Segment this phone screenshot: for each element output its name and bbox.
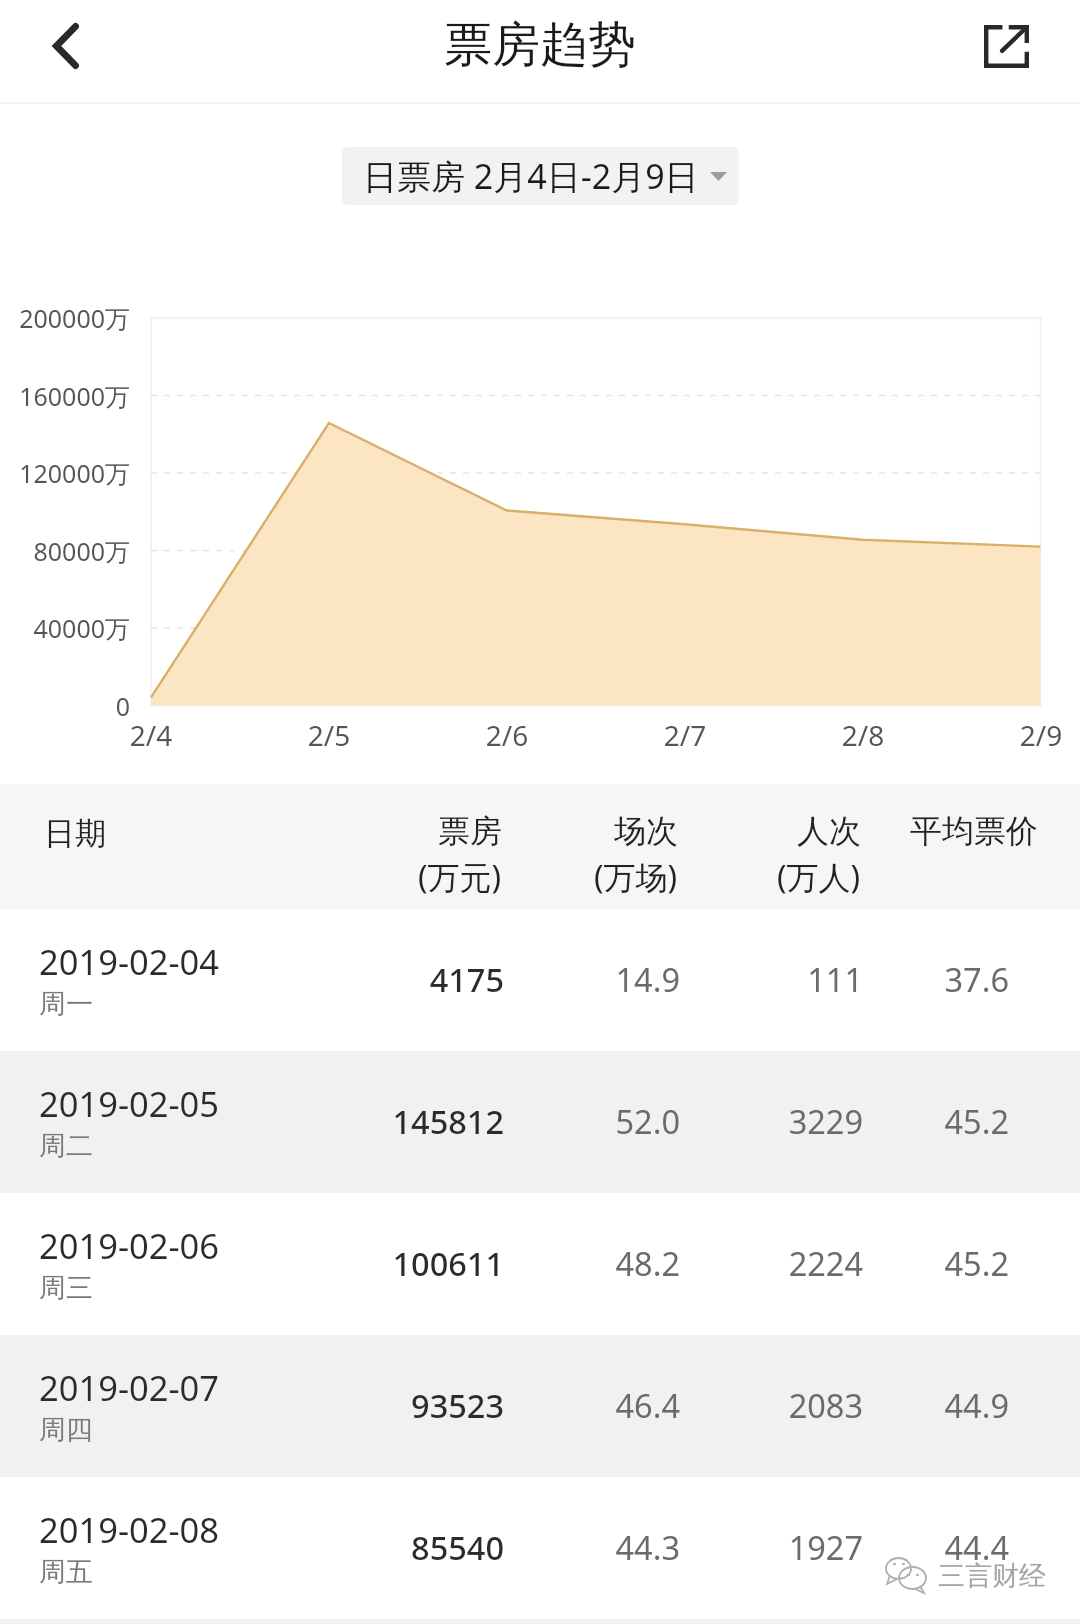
button[interactable]: 2019-02-04 xyxy=(0,909,1080,1051)
staticText: 2/7 xyxy=(640,716,730,754)
staticText: 44.9 xyxy=(709,1383,1009,1427)
staticText: 三言财经 xyxy=(938,1559,1046,1593)
staticText: 44.3 xyxy=(380,1525,680,1569)
staticText: 145812 xyxy=(204,1099,504,1143)
staticText: 45.2 xyxy=(709,1099,1009,1143)
staticText: 1927 xyxy=(563,1525,863,1569)
staticText: 2/5 xyxy=(284,716,374,754)
staticText: 48.2 xyxy=(380,1241,680,1285)
staticText: 周二 xyxy=(39,1129,93,1163)
staticText: 52.0 xyxy=(380,1099,680,1143)
staticText: 2019-02-06 xyxy=(39,1222,220,1269)
staticText: 人次 xyxy=(797,811,861,851)
staticText: 200000万 xyxy=(10,301,130,335)
staticText: 2083 xyxy=(563,1383,863,1427)
staticText: 2019-02-08 xyxy=(39,1506,220,1553)
staticText: 平均票价 xyxy=(910,811,1038,851)
staticText: 2/6 xyxy=(462,716,552,754)
staticText: (万场) xyxy=(594,855,678,899)
staticText: 111 xyxy=(563,957,863,1001)
staticText: 票房趋势 xyxy=(444,15,636,75)
button[interactable]: 2019-02-07 xyxy=(0,1335,1080,1477)
staticText: 周一 xyxy=(39,987,93,1021)
staticText: 45.2 xyxy=(709,1241,1009,1285)
staticText: 14.9 xyxy=(380,957,680,1001)
staticText: 100611 xyxy=(204,1241,504,1285)
staticText: 周四 xyxy=(39,1413,93,1447)
button[interactable]: 2019-02-06 xyxy=(0,1193,1080,1335)
staticText: 2019-02-05 xyxy=(39,1080,220,1127)
staticText: 3229 xyxy=(563,1099,863,1143)
staticText: 160000万 xyxy=(10,379,130,413)
staticText: 票房 xyxy=(438,811,502,851)
staticText: 80000万 xyxy=(10,534,130,568)
staticText: 2/4 xyxy=(106,716,196,754)
staticText: 93523 xyxy=(204,1383,504,1427)
staticText: 46.4 xyxy=(380,1383,680,1427)
staticText: (万元) xyxy=(418,855,502,899)
staticText: 2019-02-07 xyxy=(39,1364,220,1411)
button[interactable]: 2019-02-05 xyxy=(0,1051,1080,1193)
staticText: 85540 xyxy=(204,1525,504,1569)
staticText: 2/9 xyxy=(996,716,1080,754)
button[interactable]: Back xyxy=(16,0,116,92)
button[interactable]: 2019-02-08 xyxy=(0,1477,1080,1619)
staticText: 日期 xyxy=(44,814,106,853)
staticText: 40000万 xyxy=(10,611,130,645)
staticText: 37.6 xyxy=(709,957,1009,1001)
staticText: 120000万 xyxy=(10,456,130,490)
button[interactable]: Share xyxy=(956,0,1056,92)
staticText: 44.4 xyxy=(709,1525,1009,1569)
staticText: 2019-02-04 xyxy=(39,938,220,985)
staticText: 场次 xyxy=(614,811,678,851)
staticText: 2224 xyxy=(563,1241,863,1285)
staticText: 0 xyxy=(10,689,130,723)
staticText: 日票房 2月4日-2月9日 xyxy=(363,153,699,199)
staticText: 2/8 xyxy=(818,716,908,754)
staticText: 周五 xyxy=(39,1555,93,1589)
staticText: 4175 xyxy=(204,957,504,1001)
button[interactable]: 日票房 2月4日-2月9日 xyxy=(342,147,739,205)
staticText: 周三 xyxy=(39,1271,93,1305)
staticText: (万人) xyxy=(777,855,861,899)
